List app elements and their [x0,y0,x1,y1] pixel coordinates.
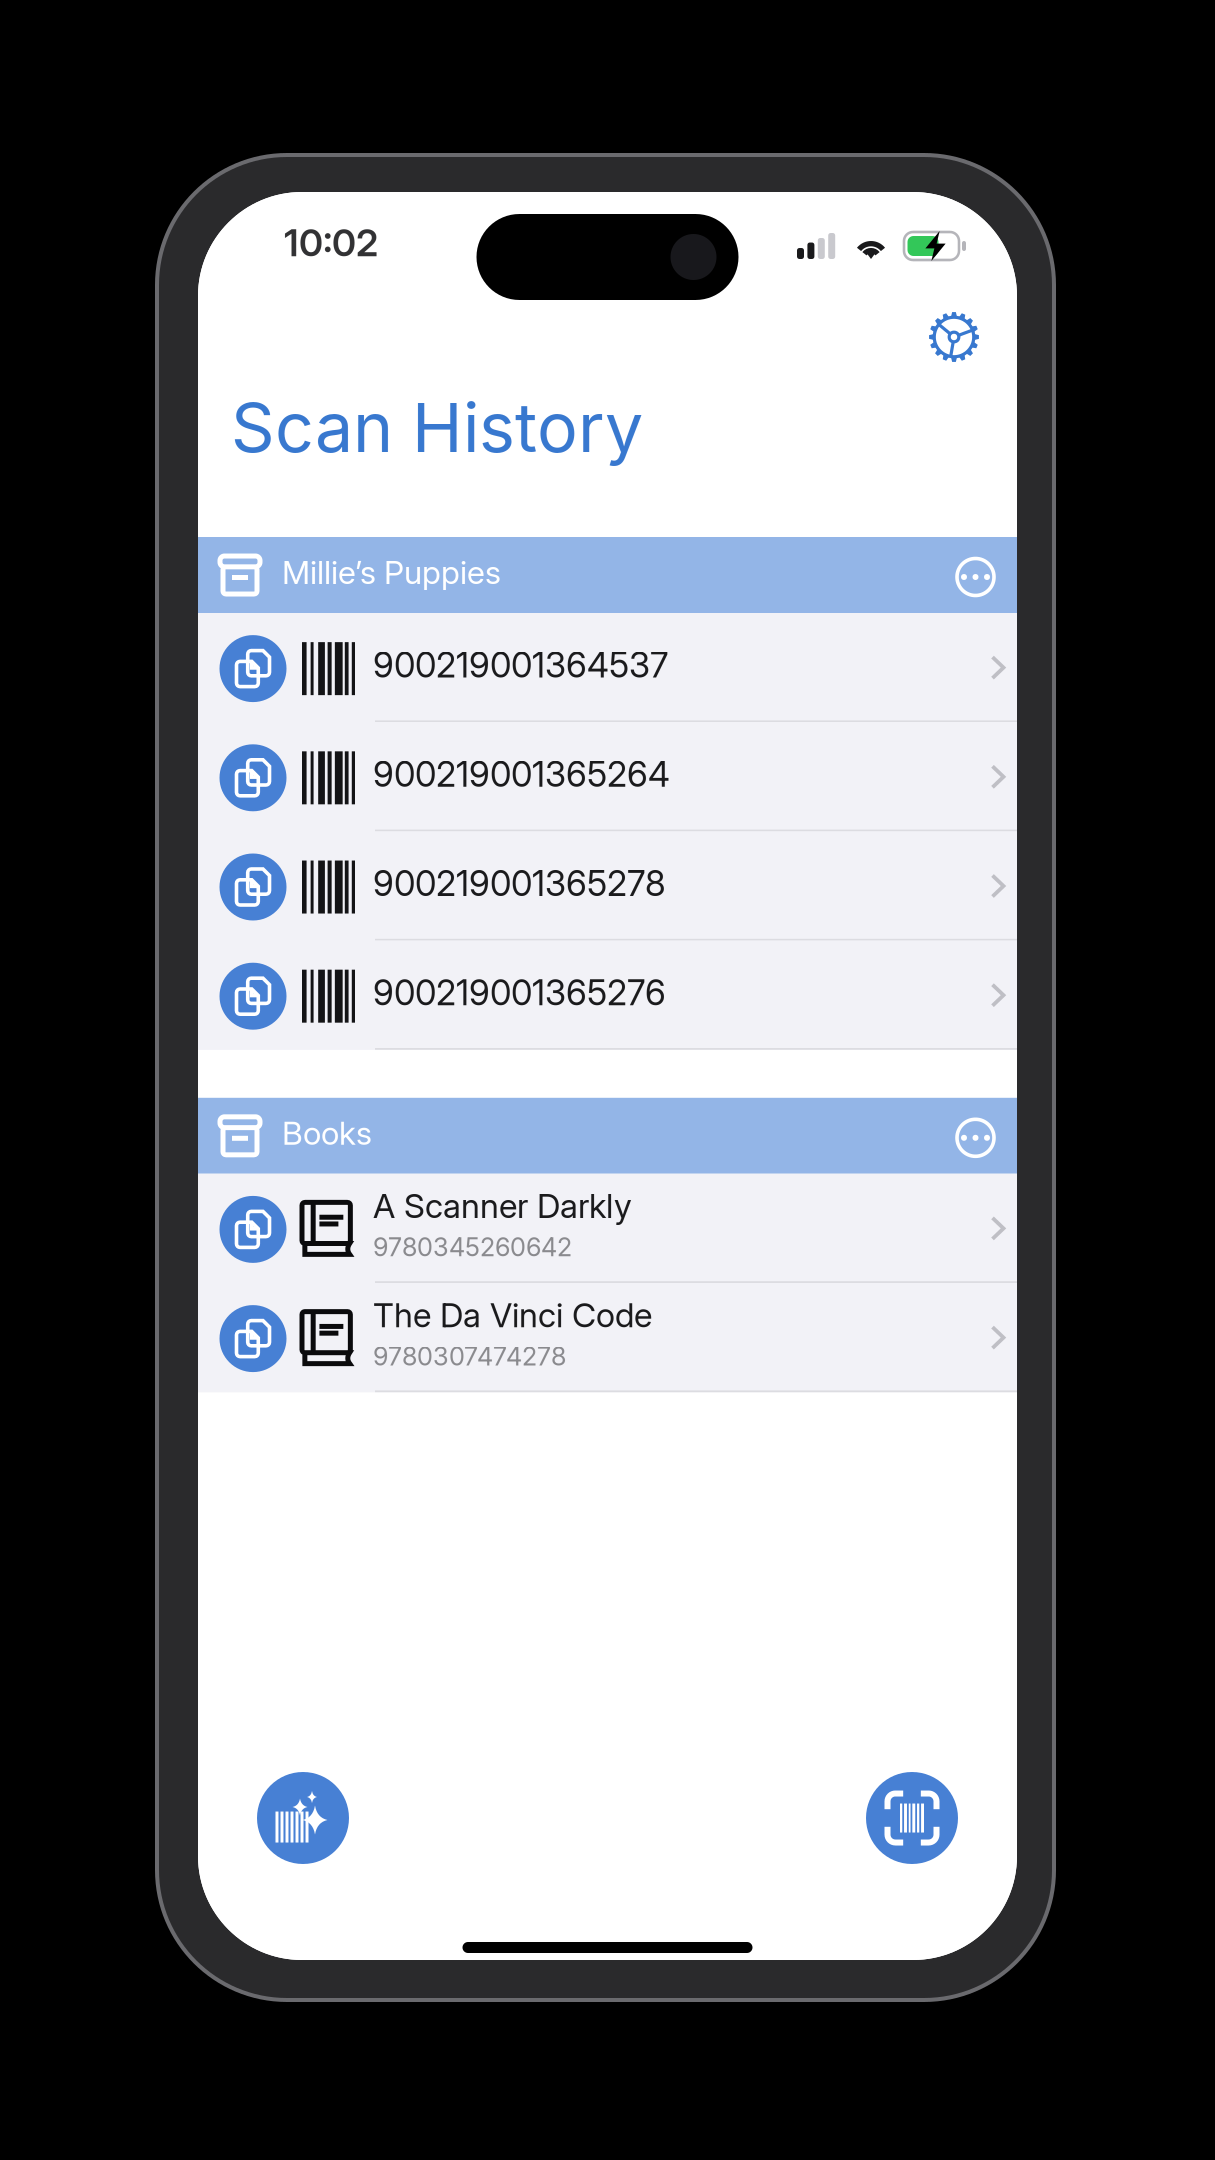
button[interactable]: 900219001365278 [198,831,1017,941]
button[interactable]: Settings [908,291,1000,383]
staticText: 900219001365276 [373,972,666,1013]
button[interactable]: 900219001365264 [198,722,1017,831]
staticText: Scan History [231,386,643,468]
button[interactable]: Millie’s Puppies [198,537,1017,613]
staticText: 10:02 [284,220,378,265]
staticText: Books [282,1114,372,1152]
button[interactable]: 900219001364537 [198,613,1017,722]
staticText: 9780345260642 [373,1232,572,1262]
button[interactable]: 900219001365276 [198,941,1017,1050]
button[interactable]: A Scanner Darkly [198,1174,1017,1283]
staticText: 900219001365278 [373,862,666,904]
button[interactable]: Scan barcode [866,1772,958,1864]
button[interactable]: Generate barcode [257,1772,349,1864]
staticText: Millie’s Puppies [282,553,501,592]
staticText: 900219001364537 [373,644,668,686]
staticText: A Scanner Darkly [373,1186,632,1226]
staticText: The Da Vinci Code [373,1295,652,1335]
button[interactable]: Books [198,1098,1017,1174]
button[interactable]: The Da Vinci Code [198,1283,1017,1392]
staticText: 900219001365264 [373,753,670,795]
staticText: 9780307474278 [373,1341,566,1372]
